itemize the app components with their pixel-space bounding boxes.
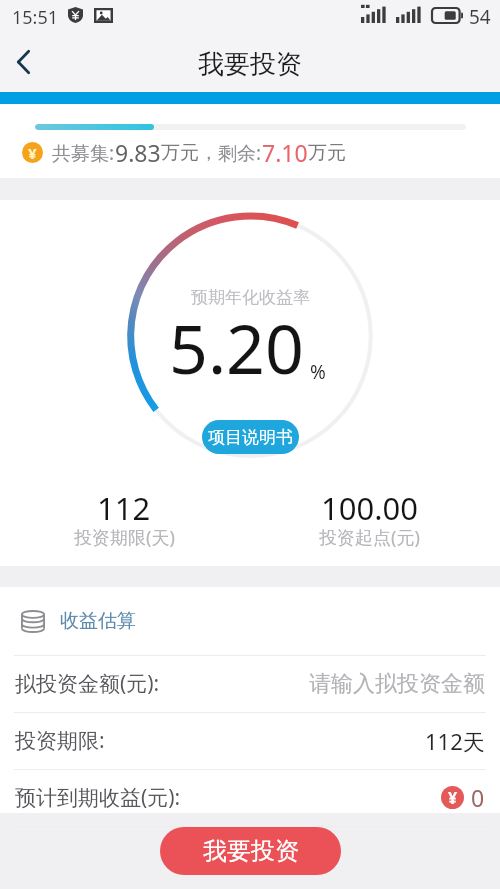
staticText: 我要投资 (203, 836, 299, 866)
staticText: 收益估算 (60, 609, 136, 633)
staticText: 我要投资 (198, 48, 302, 81)
button[interactable]: 拟投资金额(元): (15, 655, 485, 712)
staticText: ¥ (448, 787, 458, 809)
staticText: 万元 (161, 141, 199, 165)
staticText: 7.10 (262, 137, 308, 168)
staticText: ， (199, 141, 218, 165)
staticText: 投资期限: (15, 726, 105, 755)
staticText: 5.20 (169, 301, 304, 394)
staticText: 投资起点(元) (319, 525, 420, 550)
staticText: 预期年化收益率 (191, 287, 310, 308)
staticText: 剩余: (218, 140, 262, 166)
staticText: 项目说明书 (208, 427, 293, 448)
button[interactable]: Back (0, 34, 47, 90)
staticText: 万元 (308, 141, 346, 165)
staticText: 0 (471, 782, 485, 813)
button[interactable]: 项目说明书 (202, 420, 299, 454)
staticText: 15:51 (12, 5, 59, 30)
staticText: 9.83 (115, 137, 161, 168)
button[interactable]: 我要投资 (160, 827, 341, 875)
staticText: 100.00 (321, 487, 418, 529)
staticText: 拟投资金额(元): (15, 669, 160, 698)
staticText: 112天 (425, 726, 485, 756)
staticText: % (310, 359, 326, 385)
staticText: 54 (469, 4, 491, 30)
staticText: 投资期限(天) (74, 525, 175, 550)
staticText: 112 (97, 487, 151, 529)
button[interactable]: 投资期限: (15, 712, 485, 769)
staticText: 共募集: (52, 140, 115, 166)
staticText: 请输入拟投资金额 (309, 670, 485, 698)
staticText: ¥ (28, 143, 37, 163)
staticText: 预计到期收益(元): (15, 783, 181, 812)
button[interactable]: 预计到期收益(元): (15, 769, 485, 826)
